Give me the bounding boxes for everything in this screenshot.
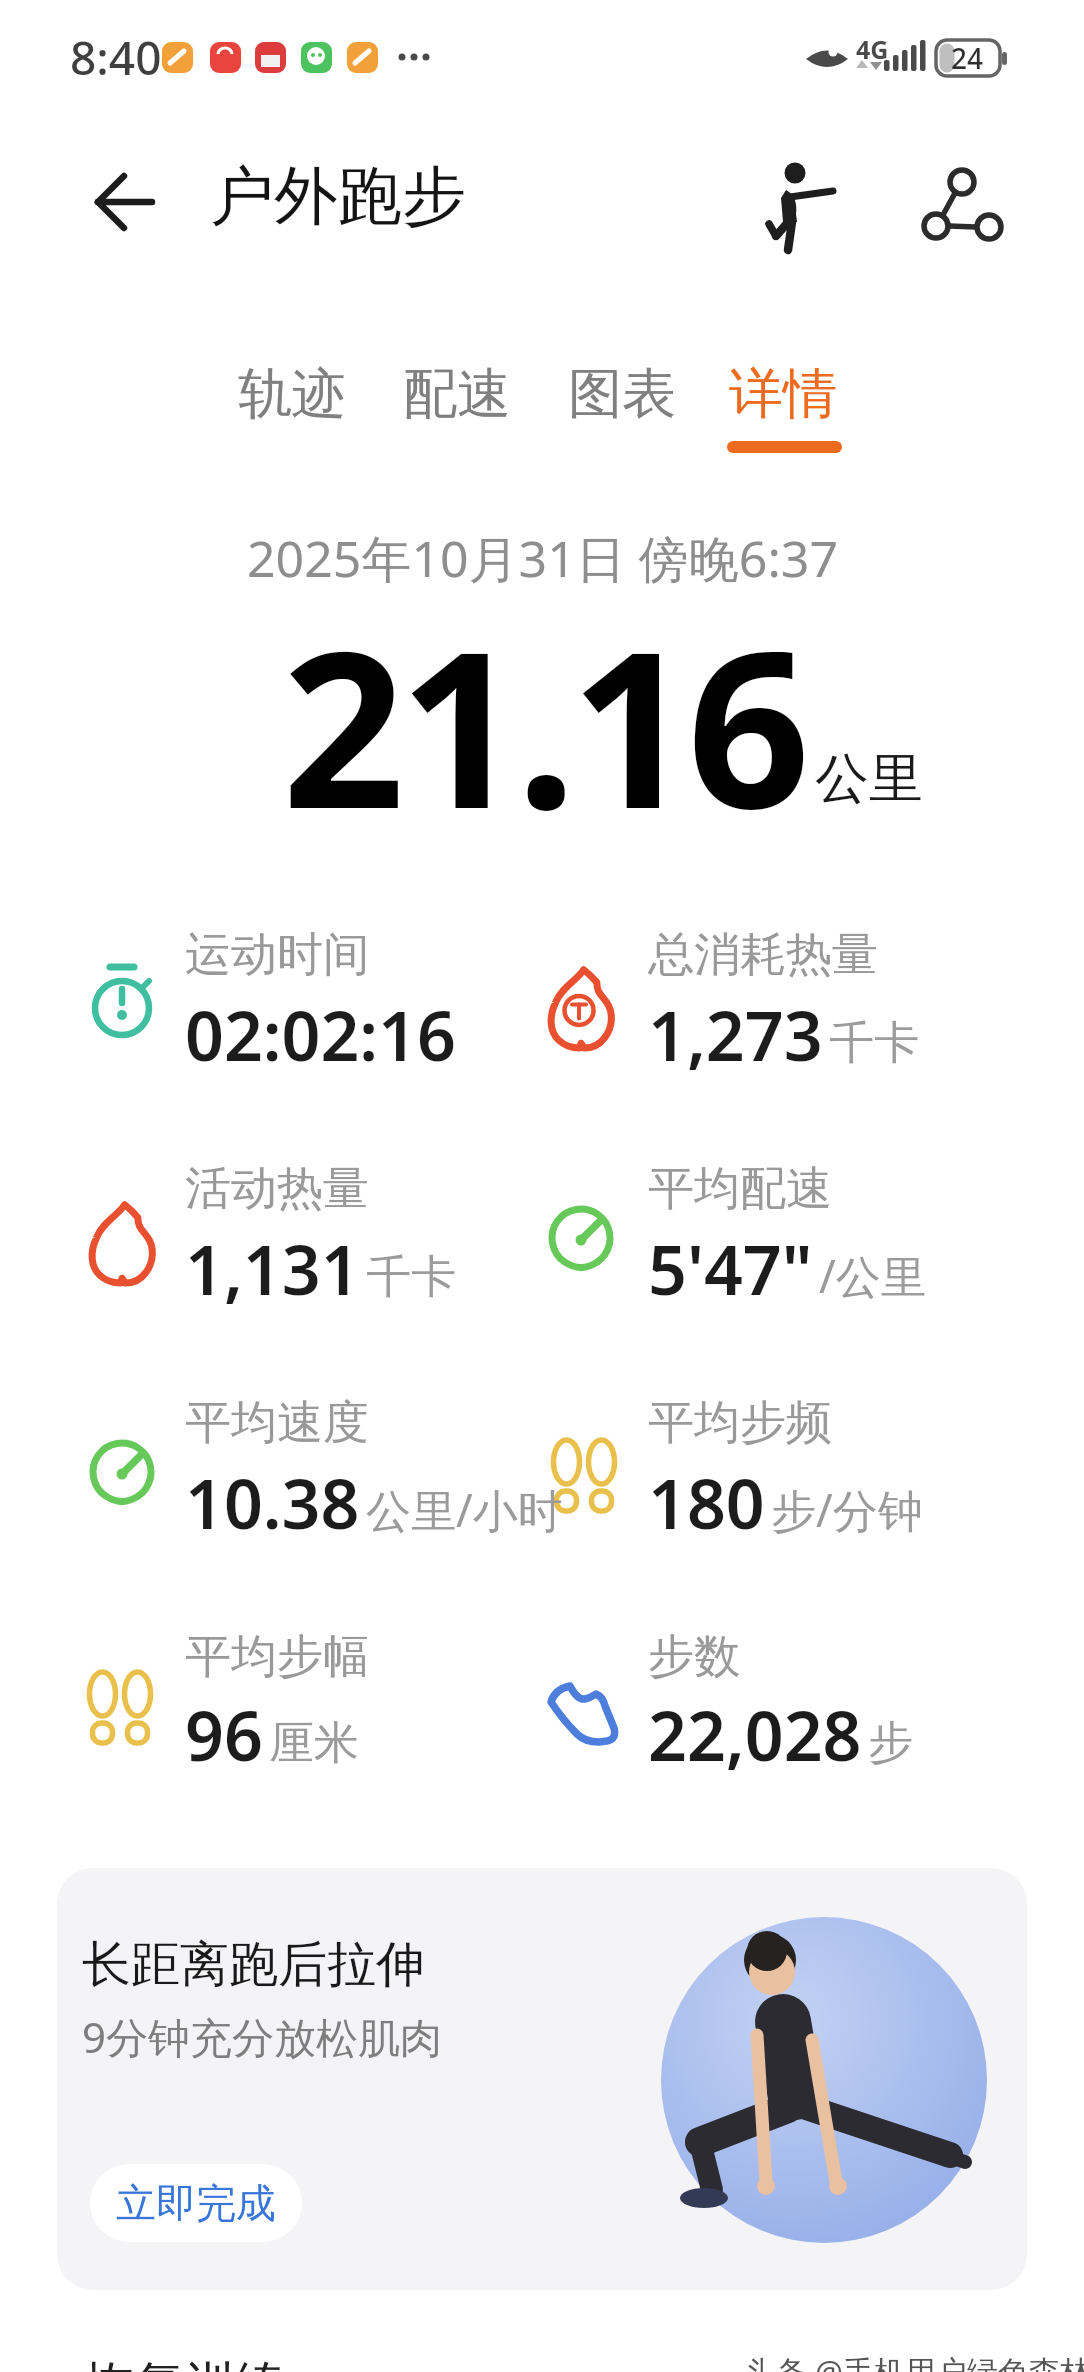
staticText: 步数 <box>648 1628 740 1686</box>
staticText: 立即完成 <box>116 2178 276 2228</box>
staticText: 21.16 <box>282 578 805 871</box>
staticText: 恢复训练 <box>85 2354 285 2372</box>
staticText: 总消耗热量 <box>648 926 878 984</box>
staticText: 详情 <box>729 360 837 428</box>
staticText: 步 <box>868 1715 913 1772</box>
staticText: 厘米 <box>269 1715 359 1772</box>
staticText: 9分钟充分放松肌肉 <box>82 2008 443 2065</box>
staticText: 1,273 <box>648 988 823 1081</box>
staticText: 户外跑步 <box>210 156 466 237</box>
button[interactable]: 轨迹 <box>228 355 362 439</box>
staticText: 5'47" <box>648 1222 813 1315</box>
staticText: 4G <box>856 32 889 66</box>
staticText: /公里 <box>819 1245 926 1306</box>
button[interactable]: 图表 <box>558 355 692 439</box>
staticText: 公里 <box>815 745 923 813</box>
staticText: 配速 <box>403 360 511 428</box>
button[interactable]: 立即完成 <box>90 2164 302 2242</box>
staticText: 步/分钟 <box>771 1479 923 1540</box>
staticText: 公里/小时 <box>366 1479 563 1540</box>
staticText: 平均速度 <box>185 1394 369 1452</box>
staticText: 22,028 <box>648 1688 862 1781</box>
staticText: 图表 <box>568 360 676 428</box>
staticText: 平均步幅 <box>185 1628 369 1686</box>
staticText: 24 <box>951 39 984 77</box>
button[interactable] <box>912 158 1006 250</box>
staticText: 长距离跑后拉伸 <box>82 1934 425 1996</box>
staticText: 平均步频 <box>648 1394 832 1452</box>
button[interactable] <box>57 1868 1027 2290</box>
button[interactable] <box>72 166 164 238</box>
button[interactable]: 详情 <box>719 355 853 439</box>
staticText: 10.38 <box>185 1456 360 1549</box>
staticText: 1,131 <box>185 1222 360 1315</box>
staticText: 活动热量 <box>185 1160 369 1218</box>
staticText: 2025年10月31日 傍晚6:37 <box>247 524 838 592</box>
staticText: 运动时间 <box>185 926 369 984</box>
staticText: 180 <box>648 1456 765 1549</box>
staticText: 平均配速 <box>648 1160 832 1218</box>
button[interactable]: 配速 <box>393 355 527 439</box>
staticText: 轨迹 <box>238 360 346 428</box>
staticText: 02:02:16 <box>185 988 456 1081</box>
staticText: 头条 @手机用户绿色森林 <box>745 2350 1084 2372</box>
button[interactable] <box>755 152 841 256</box>
staticText: 8:40 <box>70 26 162 89</box>
staticText: 96 <box>185 1688 263 1781</box>
staticText: 千卡 <box>829 1015 919 1072</box>
staticText: 千卡 <box>366 1249 456 1306</box>
